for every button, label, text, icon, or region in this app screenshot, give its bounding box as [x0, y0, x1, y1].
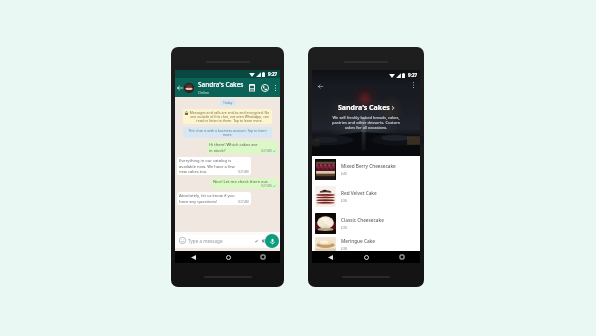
- button[interactable]: Recents: [395, 251, 409, 263]
- staticText: 9:27 AM: [261, 149, 272, 153]
- button[interactable]: Back: [314, 80, 326, 92]
- staticText: Red Velvet Cake: [341, 190, 377, 196]
- button[interactable]: Back: [175, 80, 184, 96]
- staticText: 9:27 AM: [238, 170, 249, 174]
- staticText: Type a message: [188, 238, 254, 244]
- staticText: 9:27 AM: [238, 200, 249, 204]
- button[interactable]: Back: [323, 251, 337, 263]
- staticText: Sandra's Cakes: [338, 103, 390, 113]
- staticText: 9:27: [268, 71, 278, 77]
- button[interactable]: Sandra's Cakes: [338, 103, 394, 113]
- staticText: £36: [341, 198, 348, 203]
- staticText: £30: [341, 225, 348, 230]
- button[interactable]: Call: [260, 81, 270, 95]
- button[interactable]: Type a message: [177, 235, 270, 246]
- button[interactable]: Meringue Cake: [312, 237, 420, 251]
- other: Attach: [254, 238, 260, 244]
- button[interactable]: More options: [271, 81, 279, 95]
- staticText: Hi there! Which cakes are in stock?: [209, 142, 262, 153]
- button[interactable]: Hi there! Which cakes are in stock?: [207, 141, 278, 154]
- button[interactable]: Back: [186, 251, 200, 263]
- staticText: Messages and calls are end-to-end encryp…: [189, 110, 270, 123]
- button[interactable]: Voice message: [265, 234, 279, 248]
- button[interactable]: More options: [409, 80, 418, 89]
- button[interactable]: Red Velvet Cake: [312, 183, 420, 210]
- staticText: Classic Cheesecake: [341, 217, 384, 223]
- staticText: Sandra's Cakes: [198, 80, 244, 89]
- staticText: Everything in our catalog is available n…: [179, 158, 237, 174]
- button[interactable]: Messages and calls are end-to-end encryp…: [183, 109, 272, 124]
- staticText: Absolutely, let us know if you have any …: [179, 193, 240, 204]
- staticText: Online: [198, 90, 210, 95]
- staticText: £38: [341, 246, 348, 251]
- staticText: Meringue Cake: [341, 238, 375, 244]
- staticText: This chat is with a business account. Ta…: [185, 128, 270, 137]
- staticText: 9:27: [408, 72, 418, 78]
- other: Camera: [262, 238, 268, 244]
- button[interactable]: Recents: [256, 251, 270, 263]
- staticText: £45: [341, 171, 348, 176]
- staticText: Today: [223, 100, 233, 105]
- button[interactable]: Home: [359, 251, 373, 263]
- staticText: Mixed Berry Cheesecake: [341, 163, 396, 169]
- staticText: Nice! Let me check them out.: [213, 179, 269, 185]
- button[interactable]: Mixed Berry Cheesecake: [312, 156, 420, 183]
- button[interactable]: Nice! Let me check them out.: [211, 178, 278, 189]
- button[interactable]: Everything in our catalog is available n…: [177, 157, 251, 175]
- staticText: 9:27 AM: [261, 184, 272, 188]
- button[interactable]: Absolutely, let us know if you have any …: [177, 192, 251, 205]
- button[interactable]: Catalog: [246, 81, 257, 95]
- button[interactable]: Home: [221, 251, 235, 263]
- button[interactable]: Classic Cheesecake: [312, 210, 420, 237]
- button[interactable]: This chat is with a business account. Ta…: [183, 127, 272, 138]
- staticText: We sell freshly baked breads, cakes, pas…: [329, 115, 403, 130]
